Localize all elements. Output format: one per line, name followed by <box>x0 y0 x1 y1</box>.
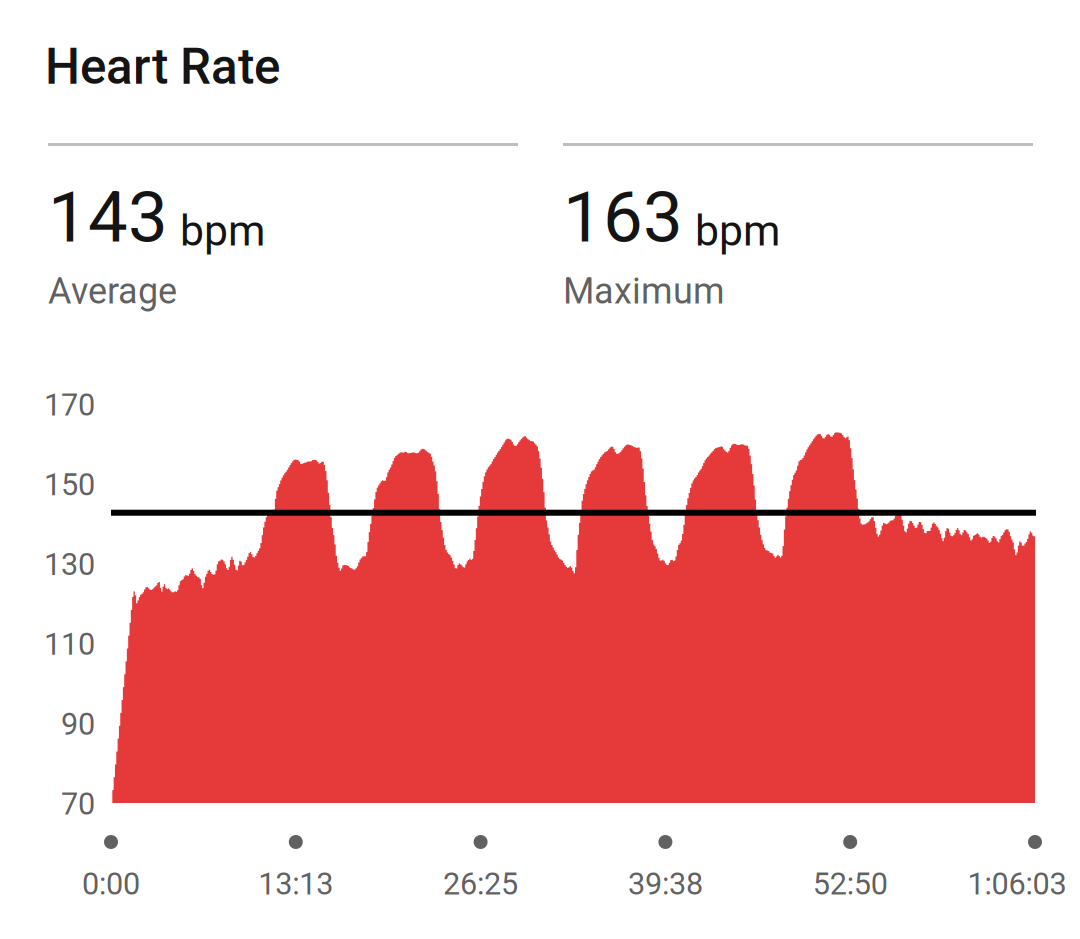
staticText: Average <box>48 270 177 312</box>
staticText: 70 <box>61 786 95 822</box>
staticText: bpm <box>180 206 265 256</box>
staticText: 110 <box>44 626 95 662</box>
staticText: 150 <box>44 467 95 503</box>
staticText: 143 <box>48 176 168 259</box>
staticText: 90 <box>61 706 95 742</box>
staticText: Maximum <box>563 270 725 312</box>
staticText: 1:06:03 <box>967 866 1066 902</box>
staticText: 170 <box>44 387 95 423</box>
staticText: 130 <box>44 547 95 582</box>
staticText: 52:50 <box>813 866 888 902</box>
staticText: 163 <box>563 176 683 259</box>
staticText: 13:13 <box>258 866 333 902</box>
button[interactable]: 143 <box>48 143 517 315</box>
staticText: 26:25 <box>443 866 518 902</box>
staticText: Heart Rate <box>45 38 280 96</box>
staticText: 39:38 <box>628 866 703 902</box>
staticText: 0:00 <box>82 866 140 902</box>
button[interactable]: 163 <box>563 143 1032 315</box>
staticText: bpm <box>695 206 780 256</box>
